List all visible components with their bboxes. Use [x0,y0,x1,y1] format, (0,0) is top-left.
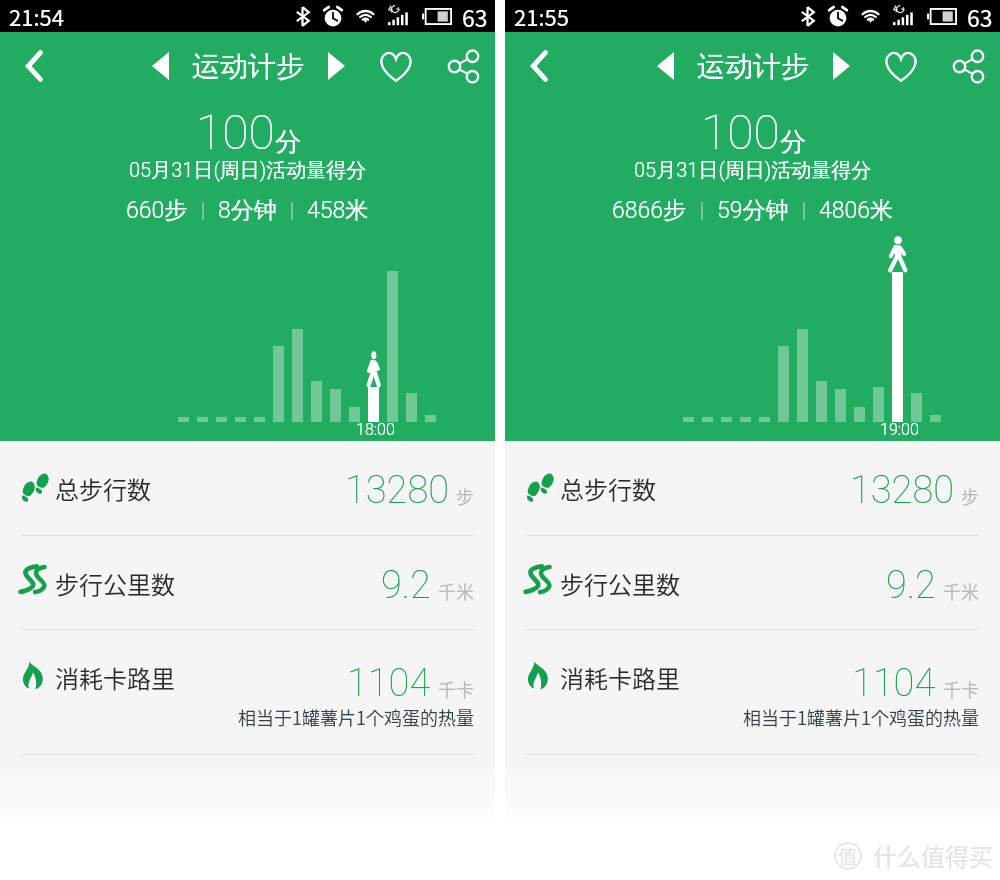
staticText: 什么值得买 [873,838,993,873]
staticText: 8分钟 [218,196,277,225]
staticText: 18:00 [356,420,395,439]
staticText: 相当于1罐薯片1个鸡蛋的热量 [238,704,474,730]
staticText: 值 [838,842,858,870]
staticText: 1104 [852,661,936,706]
staticText: 1104 [347,661,431,706]
staticText: 相当于1罐薯片1个鸡蛋的热量 [743,704,979,730]
button[interactable]: Back [516,43,562,89]
button[interactable]: Share [440,43,486,89]
button[interactable]: 总步行数 [0,441,495,535]
staticText: 63 [462,0,488,32]
staticText: 458米 [307,196,369,225]
staticText: 63 [967,0,993,32]
button[interactable]: Next day [821,46,861,86]
staticText: 4806米 [819,196,894,225]
staticText: 13280 [345,468,449,513]
staticText: 总步行数 [55,471,151,506]
staticText: 消耗卡路里 [55,660,175,695]
staticText: 总步行数 [560,471,656,506]
staticText: 05月31日(周日)活动量得分 [634,158,872,183]
staticText: 9.2 [381,563,431,608]
button[interactable]: Next day [316,46,356,86]
staticText: 消耗卡路里 [560,660,680,695]
staticText: 分 [780,126,806,159]
staticText: 21:54 [9,0,64,32]
staticText: 100 [196,104,275,160]
staticText: 分 [275,126,301,159]
staticText: 步行公里数 [560,566,680,601]
staticText: 59分钟 [717,196,789,225]
button[interactable]: Favorite [373,43,419,89]
staticText: 千卡 [943,676,979,702]
staticText: 13280 [850,468,954,513]
button[interactable]: 消耗卡路里 [505,630,1000,754]
staticText: 6866步 [612,196,687,225]
button[interactable]: Previous day [140,46,180,86]
staticText: 千卡 [438,676,474,702]
staticText: 运动计步 [192,49,304,84]
button[interactable]: Previous day [645,46,685,86]
staticText: 21:55 [514,0,569,32]
staticText: 运动计步 [697,49,809,84]
staticText: 千米 [438,578,474,604]
button[interactable]: 消耗卡路里 [0,630,495,754]
staticText: 步行公里数 [55,566,175,601]
button[interactable]: 步行公里数 [505,536,1000,629]
staticText: 19:00 [880,420,919,439]
staticText: 千米 [943,578,979,604]
button[interactable]: Favorite [878,43,924,89]
staticText: 100 [701,104,780,160]
staticText: 步 [961,483,979,509]
staticText: 05月31日(周日)活动量得分 [129,158,367,183]
button[interactable]: 总步行数 [505,441,1000,535]
staticText: 步 [456,483,474,509]
button[interactable]: 步行公里数 [0,536,495,629]
staticText: 9.2 [886,563,936,608]
staticText: 660步 [126,196,188,225]
button[interactable]: Back [11,43,57,89]
button[interactable]: Share [945,43,991,89]
